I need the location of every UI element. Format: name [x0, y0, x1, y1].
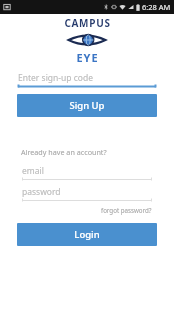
staticText: forgot password? — [101, 206, 152, 214]
staticText: password — [22, 186, 61, 198]
staticText: Already have an account? — [21, 147, 107, 157]
staticText: email — [22, 165, 44, 177]
button[interactable]: Enter sign-up code — [18, 72, 156, 88]
staticText: Enter sign-up code — [18, 72, 93, 84]
other: App notification — [3, 3, 11, 11]
button[interactable]: email — [22, 165, 152, 181]
staticText: Login — [74, 228, 100, 241]
button[interactable]: Sign Up — [17, 94, 157, 117]
button[interactable]: Login — [17, 223, 157, 246]
staticText: 6:28 AM — [142, 2, 171, 12]
staticText: CAMPUS — [64, 16, 111, 30]
button[interactable]: password — [22, 186, 152, 202]
staticText: EYE — [76, 50, 99, 65]
button[interactable]: forgot password? — [99, 204, 154, 216]
staticText: Sign Up — [69, 99, 105, 112]
